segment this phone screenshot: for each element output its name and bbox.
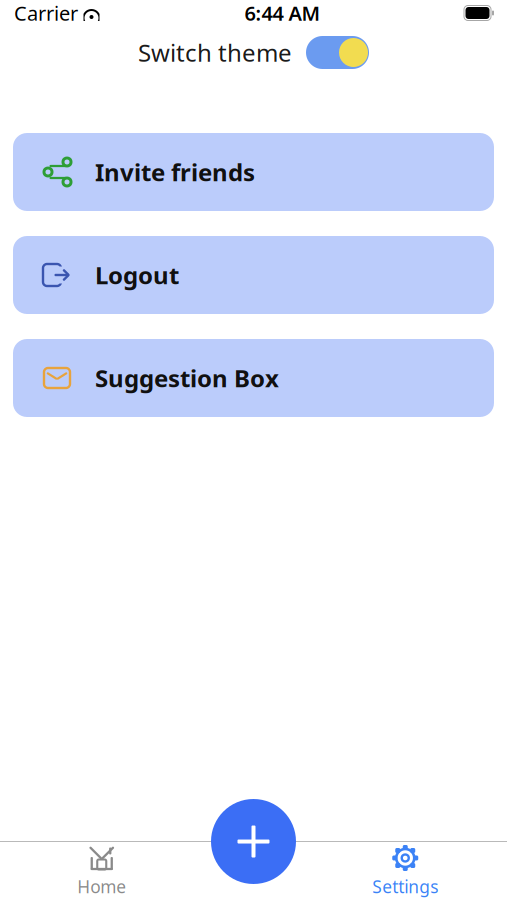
button[interactable]: Invite friends (13, 133, 494, 211)
staticText: Suggestion Box (95, 362, 279, 394)
staticText: Logout (95, 259, 179, 291)
staticText: Settings (372, 875, 438, 898)
staticText: 6:44 AM (244, 0, 320, 26)
staticText: Invite friends (95, 156, 255, 188)
button[interactable]: Logout (13, 236, 494, 314)
button[interactable]: Home (0, 842, 203, 900)
button[interactable]: Settings (303, 842, 507, 900)
button[interactable]: Suggestion Box (13, 339, 494, 417)
staticText: Carrier (14, 0, 78, 26)
staticText: Switch theme (138, 37, 292, 68)
button[interactable]: Switch theme (138, 36, 369, 69)
button[interactable]: Add (211, 799, 296, 884)
staticText: Home (77, 875, 126, 898)
